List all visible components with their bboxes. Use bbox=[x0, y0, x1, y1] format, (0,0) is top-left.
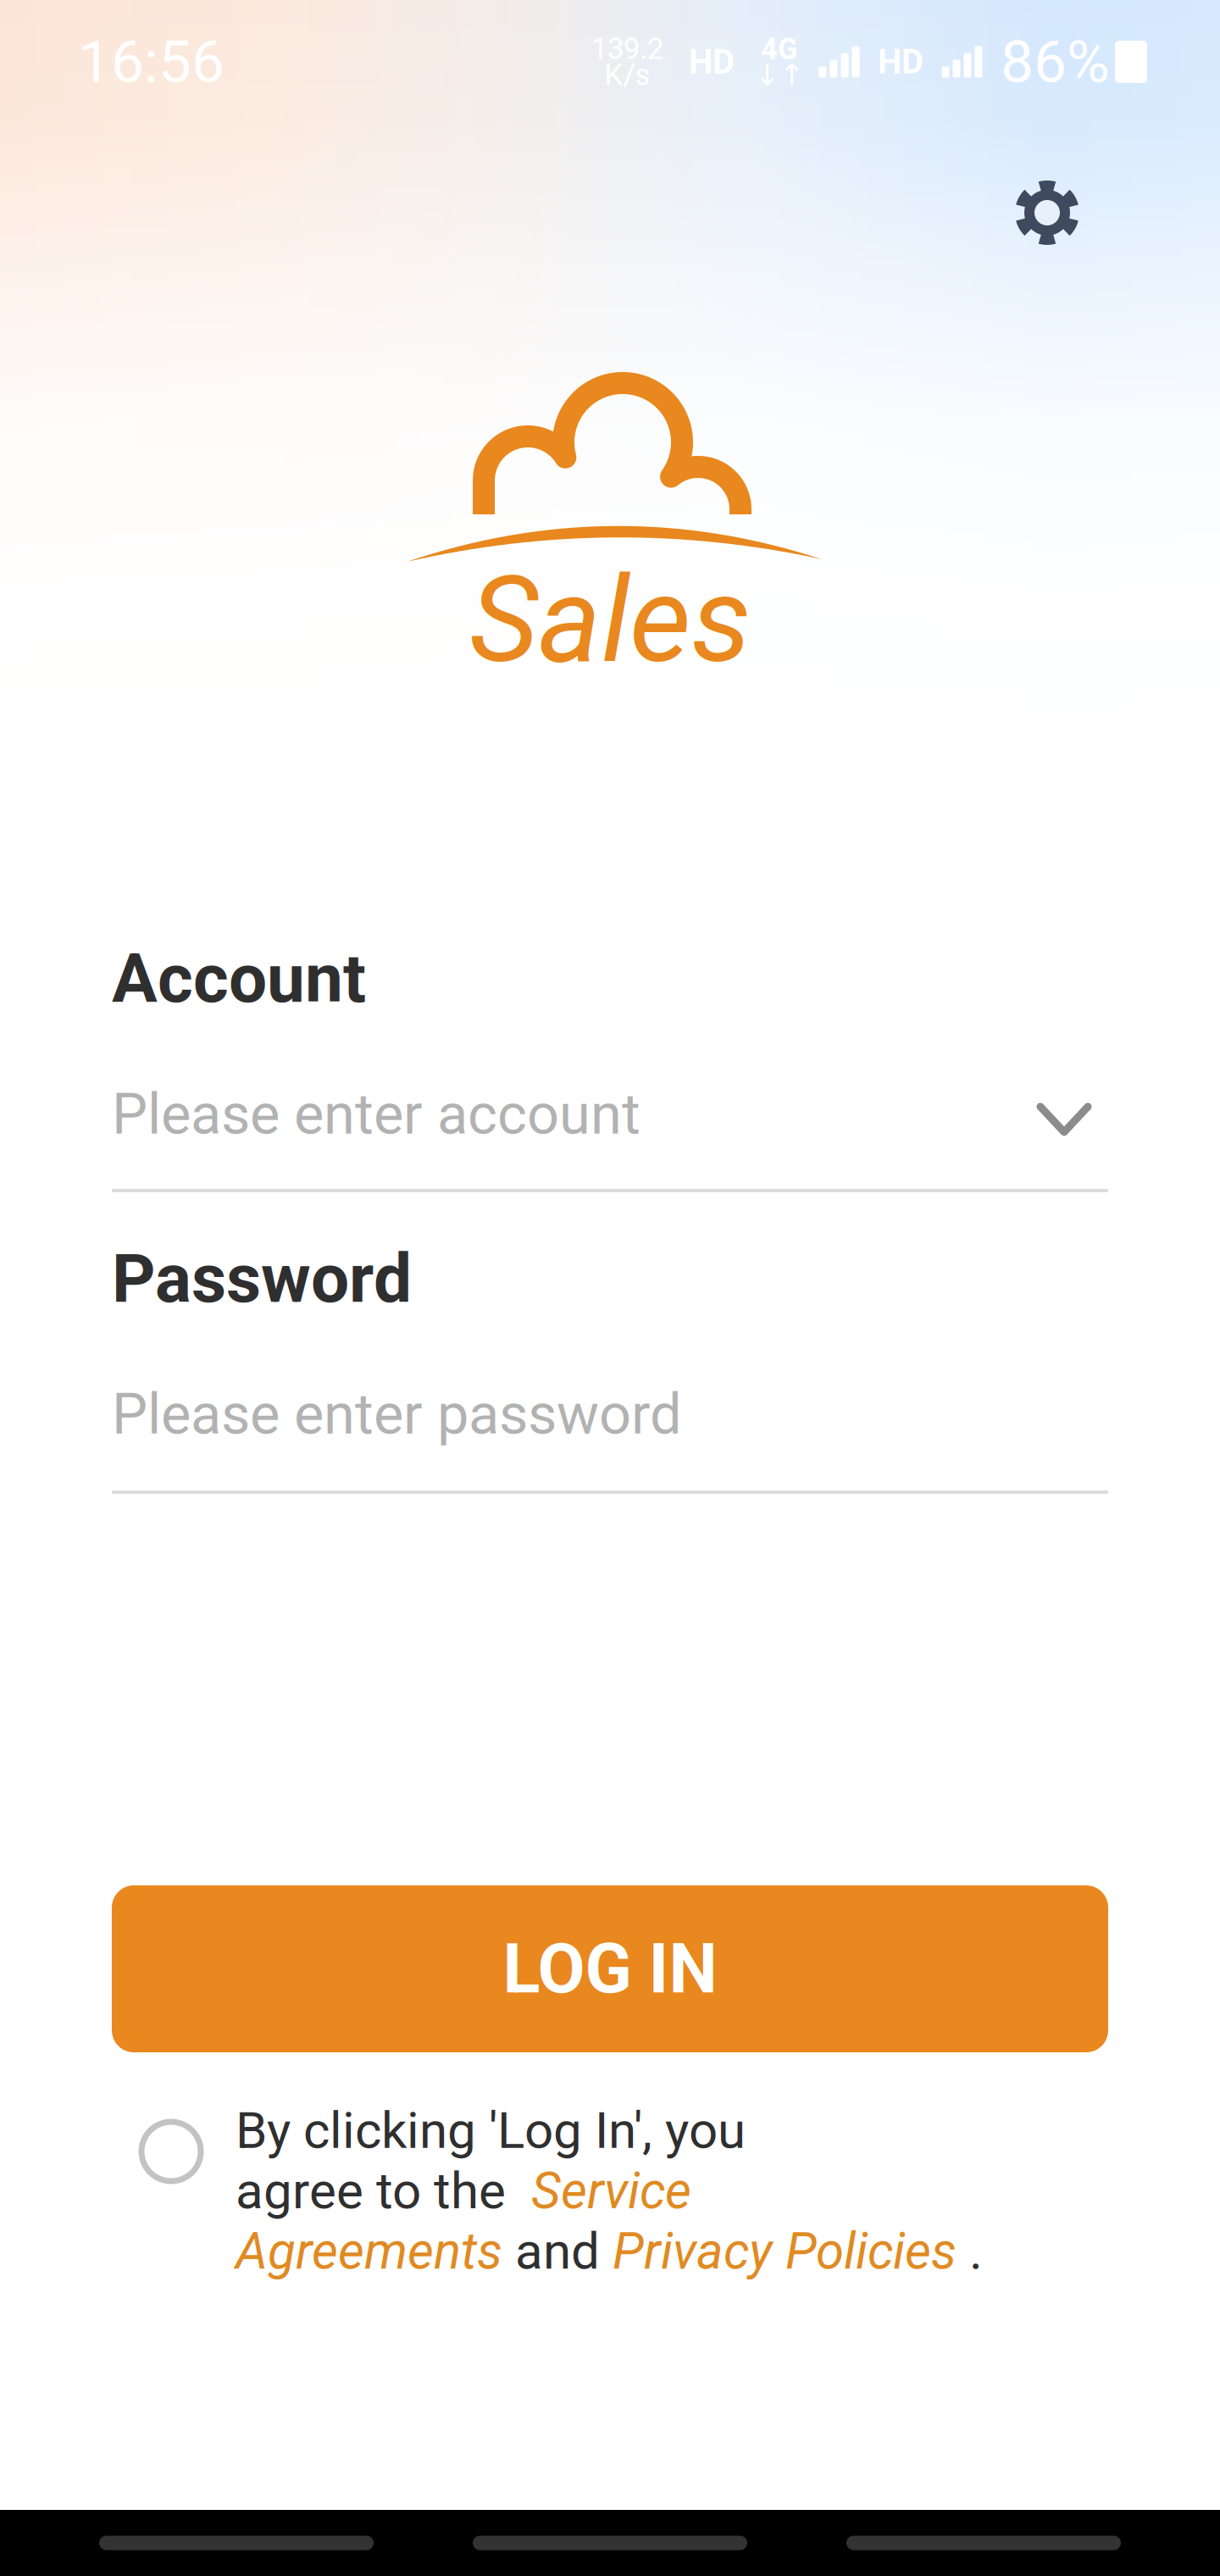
staticText: Please enter account bbox=[112, 1081, 640, 1147]
staticText: and bbox=[502, 2221, 613, 2281]
staticText: agree to the bbox=[236, 2161, 531, 2221]
button[interactable]: LOG IN bbox=[112, 1885, 1108, 2052]
staticText: LOG IN bbox=[503, 1928, 717, 2009]
staticText: 86% bbox=[1001, 27, 1110, 96]
button[interactable]: Agree to the Service Agreements and Priv… bbox=[130, 2110, 213, 2193]
staticText: HD bbox=[689, 42, 735, 82]
staticText: 139.2 bbox=[591, 32, 663, 66]
staticText: Please enter password bbox=[112, 1381, 682, 1447]
staticText: Password bbox=[112, 1239, 412, 1318]
staticText: HD bbox=[878, 42, 923, 82]
staticText: ↓↑ bbox=[755, 58, 804, 92]
staticText: Account bbox=[112, 939, 366, 1018]
staticText: . bbox=[957, 2221, 983, 2281]
staticText: By clicking 'Log In', you bbox=[236, 2101, 746, 2160]
button[interactable]: Settings bbox=[988, 153, 1106, 272]
staticText: 4G bbox=[761, 32, 798, 66]
staticText: Agreements bbox=[236, 2221, 502, 2281]
staticText: Privacy Policies bbox=[613, 2221, 957, 2281]
staticText: 16:56 bbox=[78, 27, 225, 96]
staticText: K/s bbox=[604, 58, 650, 92]
staticText: Sales bbox=[469, 550, 751, 690]
staticText: Service bbox=[531, 2161, 691, 2221]
